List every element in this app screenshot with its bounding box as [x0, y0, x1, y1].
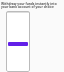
button[interactable]: [8, 42, 28, 46]
staticText: Withdraw your funds instantly into your …: [1, 2, 58, 9]
